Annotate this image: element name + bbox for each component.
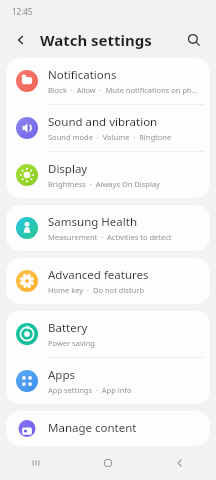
staticText: Manage content [48,420,137,436]
button[interactable]: Battery [6,311,210,358]
staticText: Samsung Health [48,214,137,230]
staticText: Watch settings [40,30,152,50]
button[interactable]: Recents [0,446,72,480]
staticText: Measurement · Activities to detect [48,232,172,242]
staticText: Display [48,161,88,177]
staticText: Apps [48,367,76,383]
staticText: Power saving [48,338,95,348]
button[interactable]: Sound and vibration [6,105,210,152]
staticText: Sound mode · Volume · Ringtone [48,132,172,142]
staticText: Battery [48,320,88,336]
staticText: Home key · Do not disturb [48,285,144,295]
button[interactable]: Advanced features [6,258,210,304]
staticText: Sound and vibration [48,114,158,130]
button[interactable]: Apps [6,358,210,404]
button[interactable]: Manage content [6,411,210,446]
staticText: Block · Allow · Mute notifications on ph… [48,85,198,95]
button[interactable]: Search [182,28,206,52]
button[interactable]: Notifications [6,58,210,105]
staticText: Advanced features [48,267,149,283]
button[interactable]: Samsung Health [6,205,210,251]
button[interactable]: Back [10,29,32,51]
button[interactable]: Home [72,446,144,480]
staticText: Notifications [48,67,117,83]
button[interactable]: Display [6,152,210,198]
button[interactable]: Back [144,446,216,480]
staticText: 12:45 [12,6,33,17]
staticText: App settings · App info [48,385,132,395]
staticText: Brightness · Always On Display [48,179,160,189]
